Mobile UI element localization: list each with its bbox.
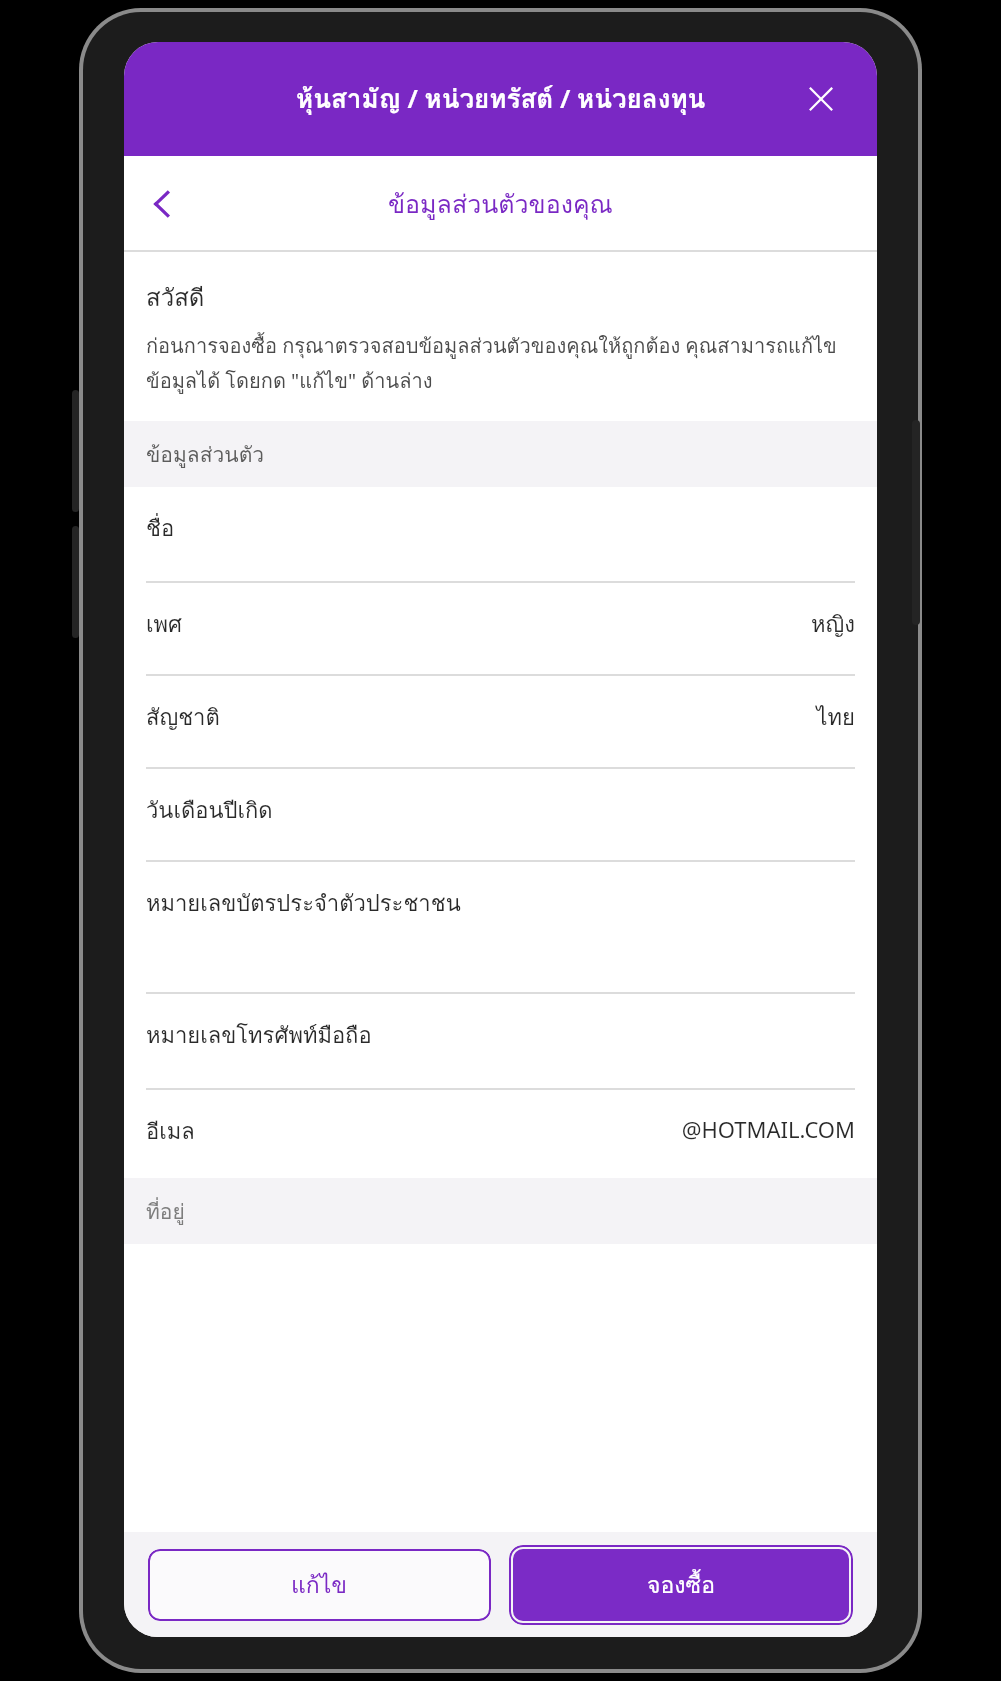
button[interactable]: Back [132,174,192,234]
staticText: ชื่อ [146,511,855,546]
button[interactable]: สัญชาติ [124,676,877,769]
staticText: วันเดือนปีเกิด [146,793,855,828]
button[interactable]: ชื่อ [124,487,877,583]
staticText: @HOTMAIL.COM [681,1114,855,1144]
staticText: ไทย [816,700,855,735]
staticText: ข้อมูลส่วนตัว [146,438,265,471]
staticText: ก่อนการจองซื้อ กรุณาตรวจสอบข้อมูลส่วนตัว… [146,330,837,397]
button[interactable]: วันเดือนปีเกิด [124,769,877,862]
staticText: อีเมล [146,1114,681,1149]
staticText: สวัสดี [146,278,205,316]
staticText: เพศ [146,607,811,642]
button[interactable]: หมายเลขโทรศัพท์มือถือ [124,994,877,1090]
staticText: หุ้นสามัญ / หน่วยทรัสต์ / หน่วยลงทุน [296,78,706,119]
button[interactable]: หมายเลขบัตรประจำตัวประชาชน [124,862,877,994]
button[interactable]: แก้ไข [148,1549,491,1621]
button[interactable]: เพศ [124,583,877,676]
staticText: แก้ไข [291,1567,348,1604]
staticText: หญิง [811,607,855,642]
staticText: ที่อยู่ [146,1195,185,1228]
staticText: หมายเลขบัตรประจำตัวประชาชน [146,886,855,921]
staticText: ข้อมูลส่วนตัวของคุณ [388,184,613,224]
button[interactable]: Close [795,73,847,125]
staticText: หมายเลขโทรศัพท์มือถือ [146,1018,855,1053]
staticText: สัญชาติ [146,700,816,735]
staticText: จองซื้อ [647,1567,715,1604]
button[interactable]: อีเมล [124,1090,877,1178]
button[interactable]: จองซื้อ [513,1549,849,1621]
